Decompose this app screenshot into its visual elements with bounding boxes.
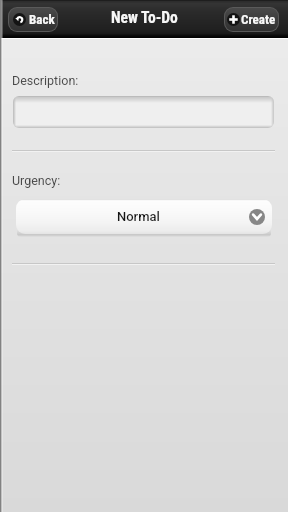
staticText: Description: [12,73,79,88]
button[interactable]: Create [224,7,279,32]
staticText: Create [241,12,276,27]
button[interactable]: Back [8,7,58,32]
staticText: Back [29,12,55,27]
other: Open urgency menu [249,209,265,225]
staticText: Urgency: [12,173,61,188]
button[interactable]: Normal [16,199,272,234]
staticText: New To-Do [111,9,178,27]
button[interactable] [13,96,274,128]
staticText: Normal [117,209,160,224]
